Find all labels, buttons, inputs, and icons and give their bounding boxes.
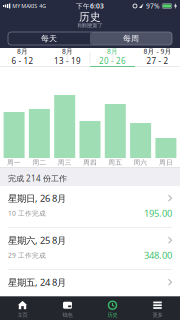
staticText: 27 - 2 xyxy=(146,56,168,66)
staticText: 周一 xyxy=(7,158,21,167)
staticText: 348.00 xyxy=(144,249,172,261)
staticText: 周六 xyxy=(134,158,148,167)
button[interactable]: 历史 xyxy=(90,297,135,320)
staticText: 29 工作完成 xyxy=(8,251,46,260)
staticText: 97% xyxy=(146,2,160,10)
staticText: 星期五, 24 8月 xyxy=(8,276,66,288)
staticText: 历史 xyxy=(79,10,101,23)
button[interactable]: 星期五, 24 8月 xyxy=(0,270,180,312)
staticText: 周二 xyxy=(32,158,46,167)
staticText: 刚刚更新了 xyxy=(77,22,102,29)
staticText: 星期日, 26 8月 xyxy=(8,192,66,204)
staticText: 195.00 xyxy=(144,207,172,219)
button[interactable]: 更多 xyxy=(135,297,180,320)
button[interactable]: 每周 xyxy=(90,32,172,45)
button[interactable]: 8月 xyxy=(90,48,135,67)
button[interactable]: 每天 xyxy=(8,32,90,45)
staticText xyxy=(8,293,10,302)
staticText: 13 - 19 xyxy=(54,56,81,66)
staticText: 10 工作完成 xyxy=(8,209,46,218)
staticText: 周五 xyxy=(108,158,122,167)
staticText: 20 - 26 xyxy=(99,56,126,66)
staticText: 8月 xyxy=(17,47,28,56)
staticText: 周四 xyxy=(83,158,97,167)
button[interactable]: 主页 xyxy=(0,297,45,320)
button[interactable]: 星期六, 25 8月 xyxy=(0,228,180,270)
staticText: 历史 xyxy=(107,312,117,318)
staticText xyxy=(170,291,172,303)
staticText: 完成 214 份工作 xyxy=(8,173,67,184)
staticText: 周三 xyxy=(58,158,72,167)
staticText: 8月 xyxy=(107,47,118,56)
button[interactable]: 钱包 xyxy=(45,297,90,320)
button[interactable]: 8月 - 9月 xyxy=(135,48,180,67)
staticText: 主页 xyxy=(17,312,27,318)
staticText: 钱包 xyxy=(62,312,72,318)
staticText: 8月 xyxy=(62,47,73,56)
button[interactable]: 星期日, 26 8月 xyxy=(0,186,180,228)
staticText: 星期六, 25 8月 xyxy=(8,234,66,246)
staticText: 6 - 12 xyxy=(11,56,33,66)
staticText: 下午6:03 xyxy=(76,2,104,10)
button[interactable]: 8月 xyxy=(0,48,45,67)
button[interactable]: 8月 xyxy=(45,48,90,67)
staticText: 每周 xyxy=(123,34,139,43)
staticText: MY MAXIS 4G xyxy=(12,2,46,10)
staticText: 周日 xyxy=(159,158,173,167)
staticText: 8月 - 9月 xyxy=(143,47,171,56)
staticText: 每天 xyxy=(41,34,57,43)
staticText: 更多 xyxy=(152,312,162,318)
